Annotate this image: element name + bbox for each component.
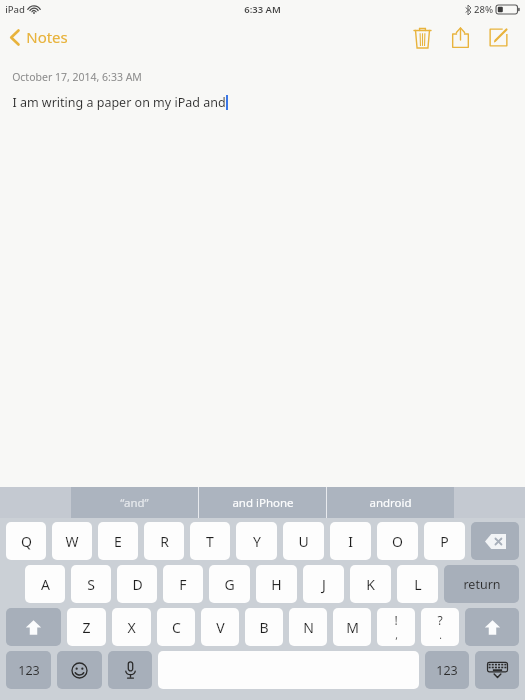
button[interactable]: N (289, 608, 327, 646)
button[interactable]: L (397, 565, 438, 603)
staticText: Z (82, 618, 91, 637)
button[interactable]: V (201, 608, 239, 646)
staticText: and iPhone (232, 495, 294, 511)
button[interactable]: S (71, 565, 111, 603)
staticText: W (65, 532, 79, 551)
staticText: 123 (18, 662, 40, 679)
staticText: L (414, 575, 422, 594)
button[interactable]: Dictation (108, 651, 152, 689)
button[interactable]: K (350, 565, 391, 603)
staticText: return (463, 576, 501, 593)
button[interactable]: Y (236, 522, 277, 560)
staticText: October 17, 2014, 6:33 AM (12, 70, 142, 84)
staticText: S (87, 575, 95, 594)
staticText: I am writing a paper on my iPad and (12, 94, 226, 111)
button[interactable]: A (25, 565, 65, 603)
button[interactable]: “and” (71, 487, 198, 518)
staticText: G (224, 575, 235, 594)
button[interactable]: D (117, 565, 157, 603)
button[interactable]: M (333, 608, 371, 646)
button[interactable]: X (112, 608, 151, 646)
button[interactable]: Q (6, 522, 46, 560)
button[interactable]: C (157, 608, 195, 646)
staticText: J (322, 575, 326, 594)
button[interactable]: Delete note (403, 18, 441, 56)
button[interactable]: H (256, 565, 297, 603)
button[interactable]: B (245, 608, 283, 646)
button[interactable]: return (444, 565, 519, 603)
button[interactable]: ? (421, 608, 459, 646)
staticText: android (369, 495, 412, 511)
button[interactable]: F (163, 565, 203, 603)
staticText: 6:33 AM (244, 3, 281, 16)
staticText: ! (394, 612, 398, 628)
button[interactable]: ! (377, 608, 415, 646)
staticText: X (127, 618, 136, 637)
button[interactable]: Notes (0, 23, 78, 51)
button[interactable]: 123 (425, 651, 469, 689)
staticText: A (41, 575, 50, 594)
staticText: V (216, 618, 225, 637)
staticText: . (439, 628, 442, 642)
staticText: M (346, 618, 359, 637)
button[interactable]: I (330, 522, 371, 560)
button[interactable]: Backspace (471, 522, 519, 560)
button[interactable]: Hide keyboard (475, 651, 519, 689)
button[interactable]: U (283, 522, 324, 560)
button[interactable]: Z (67, 608, 106, 646)
button[interactable]: J (303, 565, 344, 603)
staticText: iPad (5, 3, 25, 16)
staticText: F (179, 575, 187, 594)
button[interactable]: and iPhone (199, 487, 326, 518)
staticText: N (303, 618, 314, 637)
staticText: D (132, 575, 143, 594)
button[interactable]: O (377, 522, 418, 560)
button[interactable]: New note (479, 18, 517, 56)
staticText: Q (21, 532, 32, 551)
button[interactable]: P (424, 522, 465, 560)
staticText: 28% (474, 3, 493, 16)
button[interactable]: G (209, 565, 250, 603)
staticText: “and” (120, 495, 149, 511)
button[interactable]: E (98, 522, 138, 560)
staticText: O (392, 532, 403, 551)
staticText: K (366, 575, 375, 594)
button[interactable]: Share (441, 18, 479, 56)
staticText: H (271, 575, 282, 594)
button[interactable]: T (190, 522, 230, 560)
staticText: 123 (436, 662, 458, 679)
staticText: P (440, 532, 449, 551)
staticText: , (395, 628, 398, 642)
staticText: E (114, 532, 122, 551)
staticText: C (172, 618, 181, 637)
button[interactable]: Shift (6, 608, 61, 646)
staticText: B (259, 618, 269, 637)
staticText: Y (253, 532, 261, 551)
button[interactable]: 123 (6, 651, 51, 689)
staticText: T (206, 532, 214, 551)
staticText: I (348, 532, 353, 551)
staticText: Notes (26, 27, 68, 47)
button[interactable]: R (144, 522, 184, 560)
staticText: ? (437, 612, 443, 628)
button[interactable]: android (327, 487, 454, 518)
button[interactable]: W (52, 522, 92, 560)
button[interactable]: Emoji (57, 651, 102, 689)
staticText: R (160, 532, 169, 551)
button[interactable]: Shift (465, 608, 519, 646)
staticText: U (298, 532, 309, 551)
